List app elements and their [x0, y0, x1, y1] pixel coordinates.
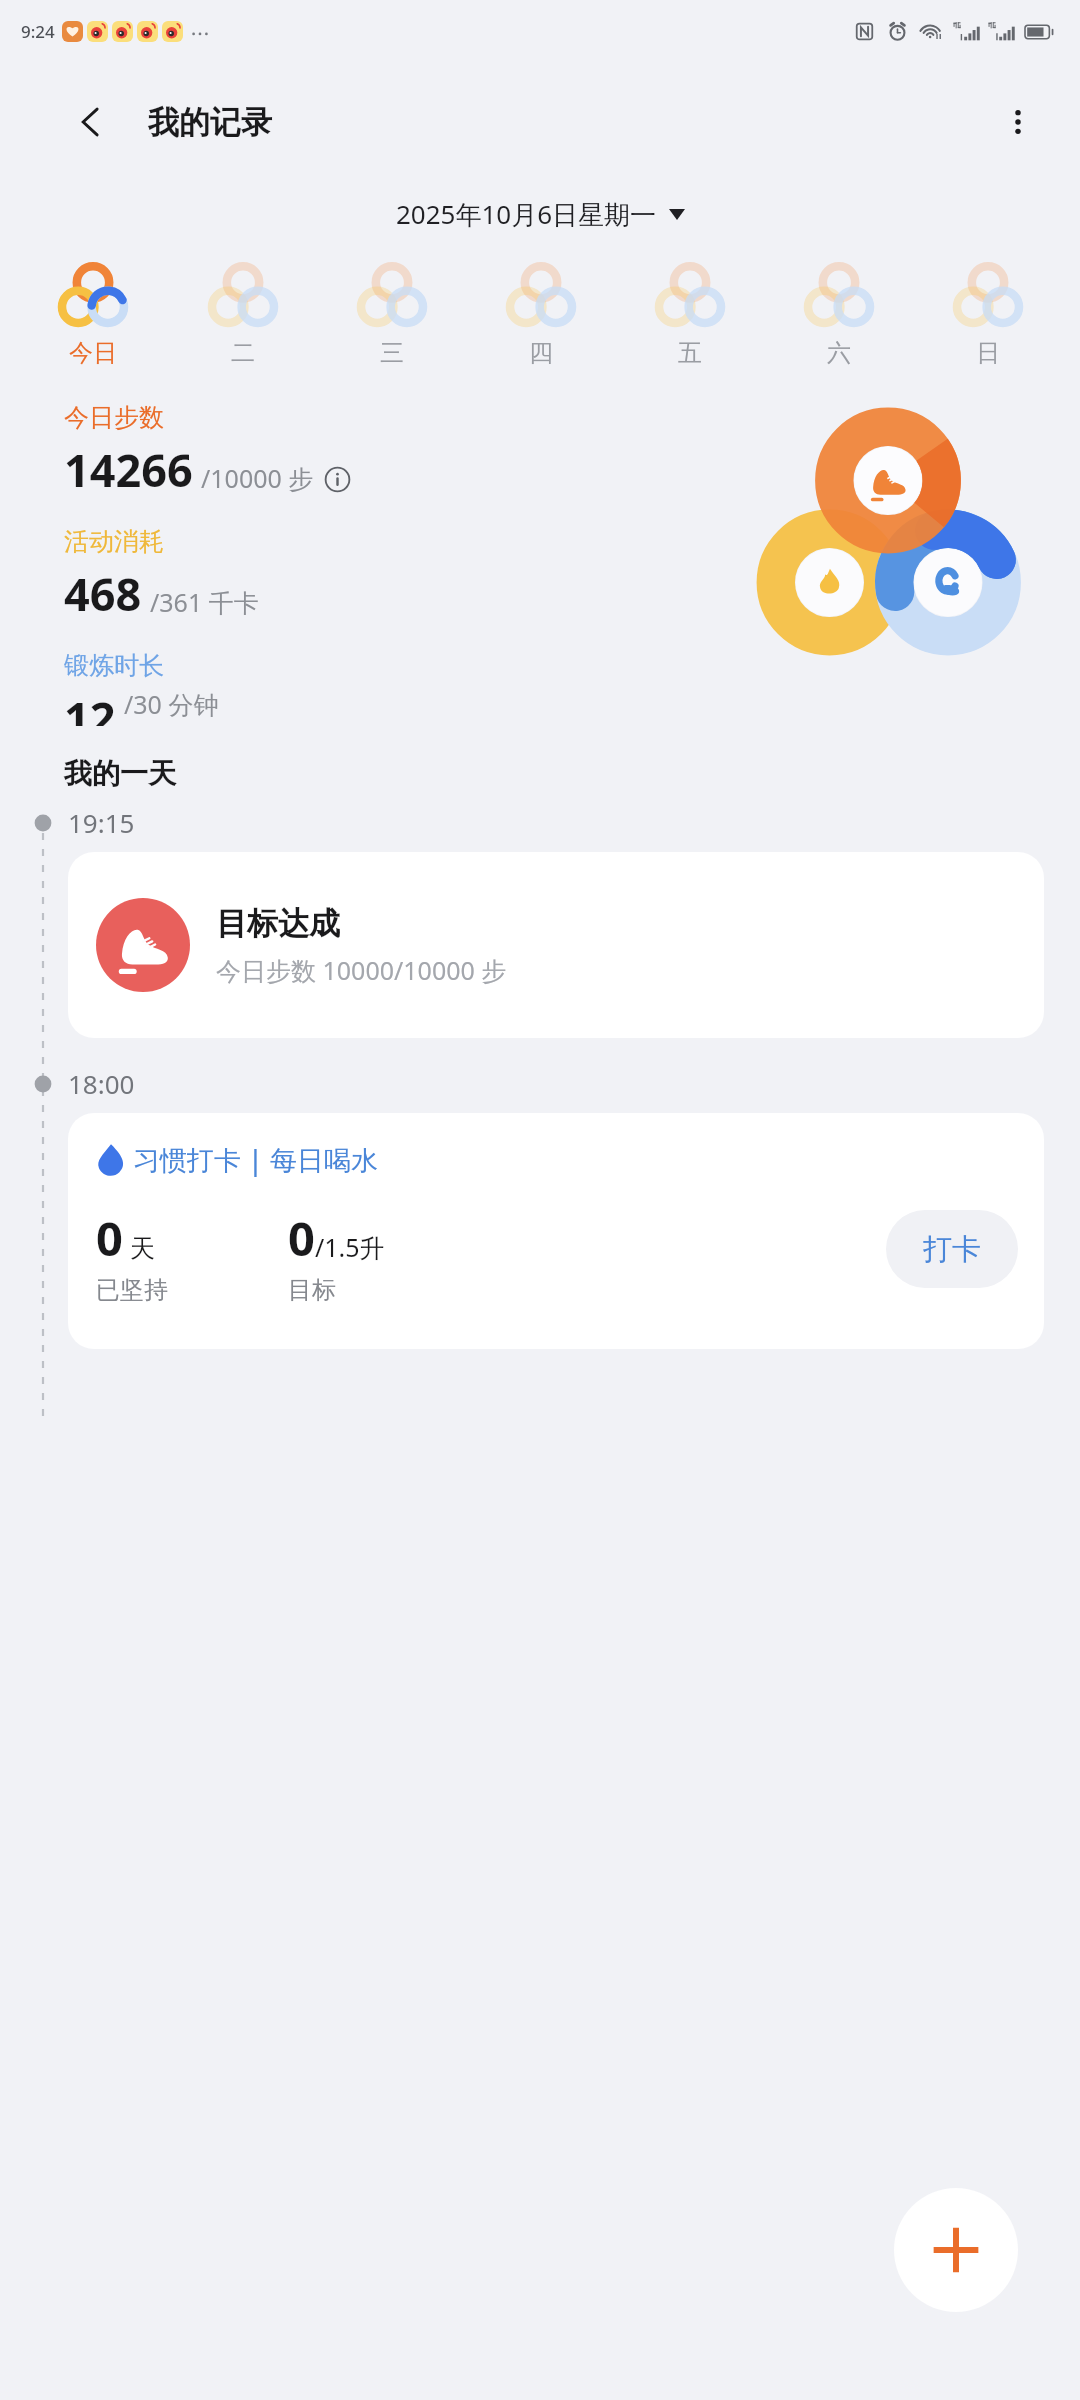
staticText: 习惯打卡 | 每日喝水: [133, 1141, 378, 1178]
button[interactable]: 四: [466, 260, 615, 370]
staticText: 锻炼时长: [64, 650, 164, 681]
staticText: 三: [380, 338, 404, 368]
staticText: /361 千卡: [150, 585, 259, 619]
staticText: 四: [529, 338, 553, 368]
button[interactable]: Info: [324, 466, 351, 493]
staticText: 2025年10月6日星期一: [396, 196, 657, 232]
staticText: 14266: [64, 439, 193, 500]
button[interactable]: 三: [317, 260, 466, 370]
staticText: 12: [64, 687, 116, 726]
staticText: 目标: [288, 1275, 336, 1305]
button[interactable]: 打卡: [886, 1210, 1018, 1288]
button[interactable]: 习惯打卡 | 每日喝水: [68, 1113, 1044, 1349]
staticText: 今日步数 10000/10000 步: [216, 953, 507, 987]
button[interactable]: 六: [764, 260, 913, 370]
staticText: 我的记录: [148, 103, 272, 142]
button[interactable]: Back: [62, 93, 120, 151]
staticText: 打卡: [923, 1231, 981, 1268]
staticText: 已坚持: [96, 1275, 168, 1305]
staticText: 六: [827, 338, 851, 368]
button[interactable]: 2025年10月6日星期一: [388, 192, 693, 236]
button[interactable]: 五: [615, 260, 764, 370]
staticText: 我的一天: [64, 756, 176, 791]
staticText: /10000 步: [201, 461, 314, 495]
staticText: 今日: [69, 338, 117, 368]
staticText: 0: [96, 1206, 123, 1270]
staticText: 19:15: [68, 805, 135, 840]
button[interactable]: 二: [168, 260, 317, 370]
staticText: 五: [678, 338, 702, 368]
staticText: 468: [64, 563, 142, 624]
staticText: 0: [288, 1206, 315, 1270]
staticText: /1.5升: [315, 1230, 385, 1264]
staticText: 18:00: [68, 1066, 135, 1101]
button[interactable]: 目标达成: [68, 852, 1044, 1038]
button[interactable]: [738, 398, 1038, 698]
staticText: 目标达成: [216, 904, 340, 943]
staticText: 天: [130, 1233, 155, 1264]
button[interactable]: 日: [913, 260, 1062, 370]
button[interactable]: 今日: [18, 260, 168, 370]
staticText: 9:24: [21, 20, 55, 43]
button[interactable]: More options: [989, 93, 1047, 151]
staticText: /30 分钟: [124, 687, 219, 721]
staticText: 日: [976, 338, 1000, 368]
staticText: 今日步数: [64, 402, 164, 433]
staticText: 二: [231, 338, 255, 368]
staticText: 活动消耗: [64, 526, 164, 557]
button[interactable]: Add record: [894, 2188, 1018, 2312]
